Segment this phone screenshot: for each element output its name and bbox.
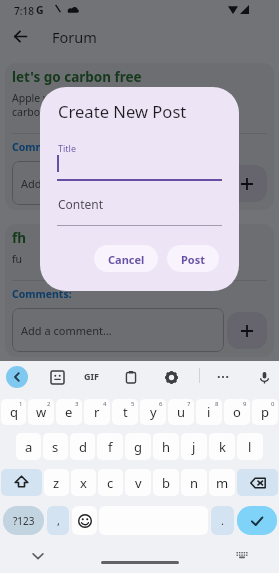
button[interactable]: Keyboard tool <box>210 364 236 390</box>
button[interactable]: d <box>70 433 95 460</box>
button[interactable]: Shift <box>1 469 42 496</box>
button[interactable]: s <box>43 433 68 460</box>
button[interactable]: g <box>125 433 151 460</box>
button[interactable]: j <box>181 433 207 460</box>
staticText: . <box>221 513 224 528</box>
staticText: , <box>57 513 60 528</box>
staticText: let's go carbon free <box>12 68 142 86</box>
staticText: 2 <box>47 400 51 408</box>
button[interactable]: Backspace <box>237 469 278 496</box>
button[interactable]: Collapse toolbar <box>6 366 28 388</box>
button[interactable]: i <box>196 399 222 425</box>
button[interactable]: k <box>209 433 235 460</box>
button[interactable]: v <box>125 469 151 496</box>
staticText: q <box>10 403 18 421</box>
staticText: v <box>135 474 142 492</box>
button[interactable]: Keyboard tool <box>251 364 277 390</box>
button[interactable]: n <box>181 469 207 496</box>
staticText: l <box>248 438 252 456</box>
staticText: Add a comment... <box>21 176 112 191</box>
staticText: 6 <box>159 400 163 408</box>
button[interactable]: ?123 <box>3 506 44 535</box>
staticText: carbon free by 2030 let's go <box>12 105 148 119</box>
button[interactable]: w <box>28 399 54 425</box>
staticText: d <box>79 438 87 456</box>
button[interactable]: z <box>44 469 69 496</box>
button[interactable]: Add comment <box>227 312 267 349</box>
button[interactable]: Add comment <box>227 165 267 202</box>
staticText: h <box>162 438 171 456</box>
button[interactable]: Cancel <box>94 245 158 272</box>
button[interactable]: b <box>153 469 179 496</box>
button[interactable]: m <box>209 469 235 496</box>
staticText: Post <box>181 252 206 267</box>
button[interactable]: y <box>140 399 166 425</box>
staticText: Create New Post <box>58 100 187 123</box>
button[interactable]: Keyboard tool <box>118 364 144 390</box>
button[interactable]: Add a comment... <box>12 161 224 205</box>
staticText: 9 <box>243 400 247 408</box>
button[interactable]: u <box>168 399 194 425</box>
staticText: y <box>150 403 157 421</box>
button[interactable]: Emoji <box>72 506 97 535</box>
staticText: k <box>219 438 226 456</box>
button[interactable]: l <box>237 433 263 460</box>
staticText: 5 <box>131 400 135 408</box>
staticText: n <box>190 474 199 492</box>
staticText: 8 <box>215 400 219 408</box>
staticText: Content <box>58 196 104 212</box>
staticText: Comments: <box>12 140 72 154</box>
button[interactable]: p <box>252 399 278 425</box>
staticText: z <box>53 474 60 492</box>
staticText: 0 <box>271 400 275 408</box>
staticText: c <box>107 474 114 492</box>
button[interactable]: e <box>56 399 82 425</box>
button[interactable]: Post <box>167 245 219 272</box>
staticText: Cancel <box>108 252 145 267</box>
button[interactable]: f <box>97 433 123 460</box>
staticText: g <box>134 438 142 456</box>
button[interactable]: o <box>224 399 250 425</box>
staticText: u <box>177 403 186 421</box>
button[interactable]: c <box>98 469 123 496</box>
staticText: i <box>207 403 211 421</box>
staticText: Title <box>58 142 76 154</box>
staticText: e <box>65 403 73 421</box>
button[interactable]: Add a comment... <box>12 308 224 352</box>
staticText: j <box>192 438 196 456</box>
button[interactable]: . <box>211 506 234 535</box>
button[interactable]: , <box>47 506 69 535</box>
staticText: GIF <box>84 370 99 382</box>
button[interactable]: r <box>84 399 110 425</box>
staticText: 7:18 <box>14 4 34 18</box>
button[interactable]: x <box>71 469 96 496</box>
button[interactable]: GIF <box>84 370 99 382</box>
button[interactable]: Enter <box>237 506 277 535</box>
staticText: Apple will be 100% carbon <box>12 91 142 105</box>
staticText: Comments: <box>12 287 72 301</box>
staticText: 7 <box>187 400 191 408</box>
staticText: s <box>52 438 59 456</box>
button[interactable]: h <box>153 433 179 460</box>
button[interactable]: q <box>1 399 26 425</box>
button[interactable]: Back <box>5 21 35 51</box>
button[interactable]: Keyboard tool <box>158 364 184 390</box>
staticText: fh <box>12 229 26 247</box>
staticText: fu <box>12 252 23 266</box>
staticText: Add a comment... <box>21 323 112 338</box>
staticText: 3 <box>75 400 79 408</box>
staticText: o <box>233 403 241 421</box>
staticText: r <box>94 403 100 421</box>
staticText: t <box>123 403 128 421</box>
button[interactable]: Hide keyboard <box>31 549 45 563</box>
staticText: 4 <box>103 400 107 408</box>
staticText: w <box>36 403 47 421</box>
button[interactable]: t <box>112 399 138 425</box>
staticText: 1 <box>19 400 23 408</box>
button[interactable]: Keyboard tool <box>44 364 70 390</box>
staticText: a <box>25 438 33 456</box>
staticText: ?123 <box>13 514 35 528</box>
staticText: b <box>162 474 170 492</box>
button[interactable]: a <box>16 433 41 460</box>
